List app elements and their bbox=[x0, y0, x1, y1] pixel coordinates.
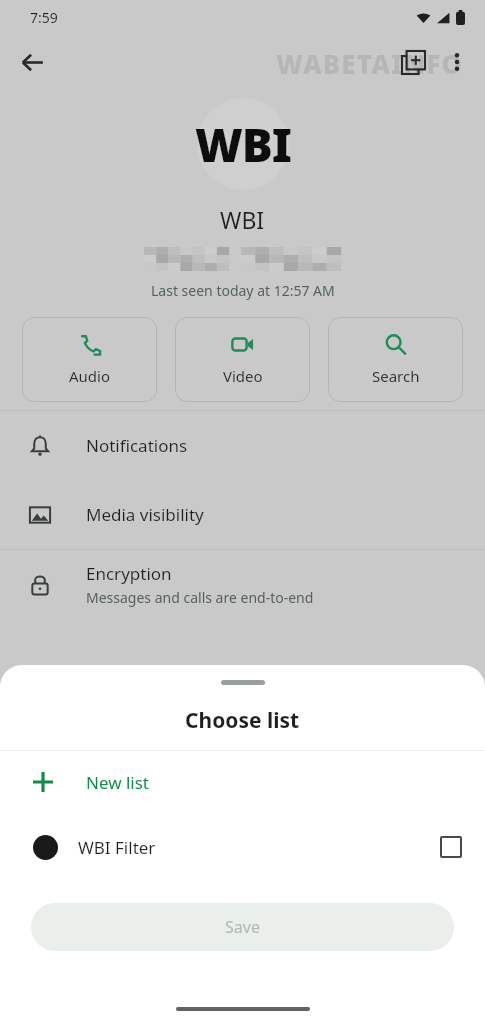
staticText: Choose list bbox=[185, 706, 300, 735]
staticText: 7:59 bbox=[30, 8, 58, 27]
staticText: Video bbox=[223, 366, 263, 386]
button[interactable]: Video bbox=[175, 317, 310, 402]
staticText: Last seen today at 12:57 AM bbox=[151, 281, 335, 300]
staticText: WBI bbox=[195, 113, 292, 176]
button[interactable]: Add to list bbox=[391, 40, 435, 84]
staticText: Media visibility bbox=[86, 503, 204, 526]
button[interactable]: Media visibility bbox=[0, 480, 485, 549]
button[interactable]: New list bbox=[0, 751, 485, 813]
button[interactable]: Encryption bbox=[0, 550, 485, 619]
button[interactable]: Notifications bbox=[0, 411, 485, 480]
button[interactable]: WBI Filter bbox=[0, 813, 485, 881]
staticText: Messages and calls are end-to-end bbox=[86, 588, 314, 607]
staticText: Save bbox=[225, 916, 260, 938]
staticText: Search bbox=[372, 366, 420, 386]
staticText: WBI Filter bbox=[78, 836, 156, 859]
staticText: Audio bbox=[69, 366, 111, 386]
staticText: Notifications bbox=[86, 434, 188, 457]
button[interactable]: Audio bbox=[22, 317, 157, 402]
staticText: WBI bbox=[220, 204, 265, 235]
staticText: Encryption bbox=[86, 562, 172, 585]
button[interactable]: Back bbox=[10, 40, 54, 84]
button[interactable]: Save bbox=[31, 903, 454, 951]
staticText: WABETAINFO bbox=[276, 46, 463, 81]
button[interactable]: Search bbox=[328, 317, 463, 402]
button[interactable]: More options bbox=[435, 40, 479, 84]
staticText: New list bbox=[86, 771, 150, 794]
staticText: WABETAINFO bbox=[60, 700, 343, 754]
